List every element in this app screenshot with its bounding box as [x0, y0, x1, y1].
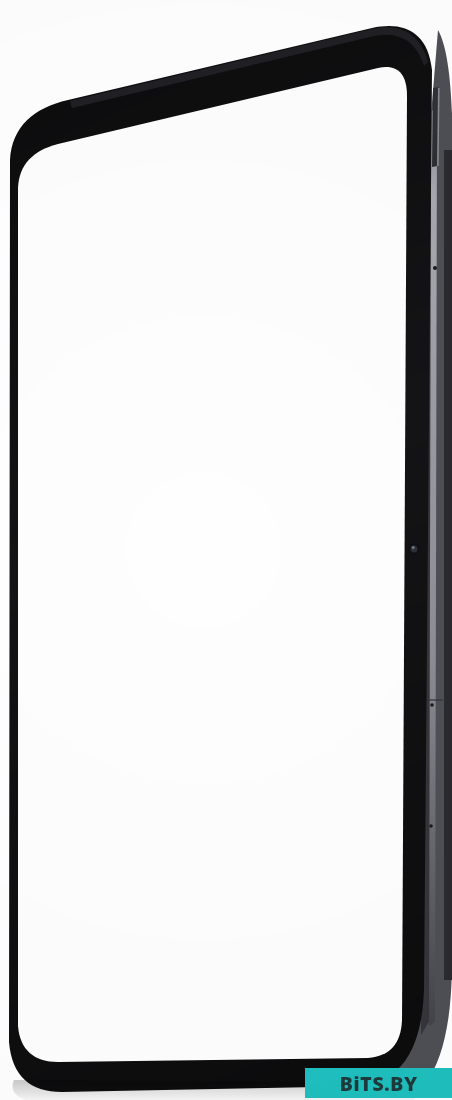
button[interactable]: Tablet device with blank screen [0, 0, 452, 1100]
